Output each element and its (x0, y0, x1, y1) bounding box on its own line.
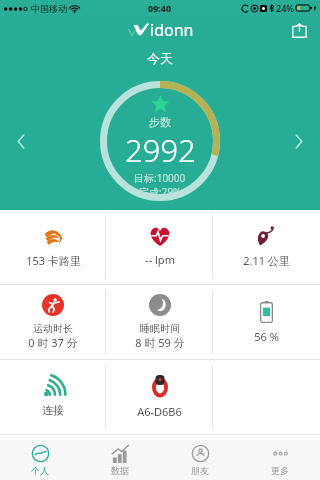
staticText: -- lpm (145, 252, 175, 267)
staticText: 09:40 (148, 2, 172, 14)
staticText: 步数 (149, 115, 171, 129)
button[interactable]: 运动时长 (0, 285, 106, 359)
button[interactable]: 朋友 (160, 440, 240, 480)
button[interactable]: Next day (286, 128, 312, 154)
button[interactable]: 56 % (213, 285, 320, 359)
staticText: 今天 (147, 50, 173, 66)
button[interactable]: 个人 (0, 440, 80, 480)
staticText: 运动时长 (33, 322, 73, 335)
staticText: 中国移动 (31, 3, 67, 14)
staticText: 8 时 59 分 (135, 335, 185, 350)
staticText: 0 时 37 分 (28, 335, 78, 350)
button[interactable]: 更多 (240, 440, 320, 480)
button[interactable]: A6-D6B6 (106, 360, 213, 434)
button[interactable]: -- lpm (106, 210, 213, 284)
button[interactable]: 2.11 公里 (213, 210, 320, 284)
staticText: 2.11 公里 (243, 253, 290, 268)
button[interactable]: 今天 (129, 47, 191, 69)
button[interactable]: Share (286, 17, 312, 43)
button[interactable]: 153 卡路里 (0, 210, 106, 284)
staticText: 睡眠时间 (140, 322, 180, 335)
button[interactable]: 数据 (80, 440, 160, 480)
staticText: 153 卡路里 (26, 253, 81, 268)
staticText: 更多 (271, 465, 289, 476)
staticText: A6-D6B6 (137, 404, 182, 419)
staticText: idonn (150, 19, 194, 41)
staticText: 目标:10000 (134, 171, 186, 185)
button[interactable]: Previous day (8, 128, 34, 154)
staticText: 连接 (42, 403, 64, 417)
staticText: 2992 (125, 129, 196, 171)
staticText: 56 % (254, 329, 279, 344)
staticText: 完成:29% (139, 185, 182, 199)
staticText: 数据 (111, 465, 129, 476)
button[interactable]: 步数 (99, 80, 221, 202)
button[interactable]: 连接 (0, 360, 106, 434)
button[interactable]: 睡眠时间 (106, 285, 213, 359)
staticText: 24% (276, 2, 294, 14)
staticText: 个人 (31, 465, 49, 476)
staticText: 朋友 (191, 465, 209, 476)
